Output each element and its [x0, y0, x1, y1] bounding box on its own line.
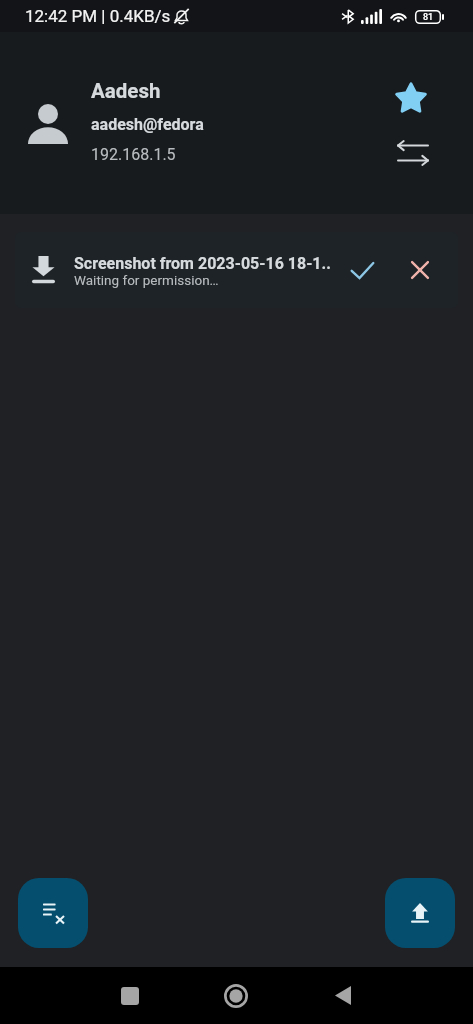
staticText: 12:42 PM | 0.4KB/s: [25, 6, 171, 26]
staticText: Screenshot from 2023-05-16 18-1..: [74, 254, 331, 273]
button[interactable]: Accept: [343, 251, 381, 289]
button[interactable]: Decline: [401, 251, 439, 289]
button[interactable]: Recents: [102, 967, 158, 1024]
button[interactable]: Transfer direction: [393, 133, 433, 173]
button[interactable]: Home: [208, 967, 264, 1024]
button[interactable]: Send file: [385, 878, 455, 948]
staticText: aadesh@fedora: [91, 115, 204, 134]
staticText: 81: [423, 12, 434, 23]
button[interactable]: Favorite: [391, 78, 431, 118]
staticText: 192.168.1.5: [91, 145, 176, 164]
staticText: Aadesh: [91, 79, 161, 103]
staticText: Waiting for permission…: [74, 272, 219, 288]
button[interactable]: Back: [315, 967, 371, 1024]
button[interactable]: Screenshot from 2023-05-16 18-1..: [15, 232, 458, 308]
button[interactable]: Clear list: [18, 878, 88, 948]
